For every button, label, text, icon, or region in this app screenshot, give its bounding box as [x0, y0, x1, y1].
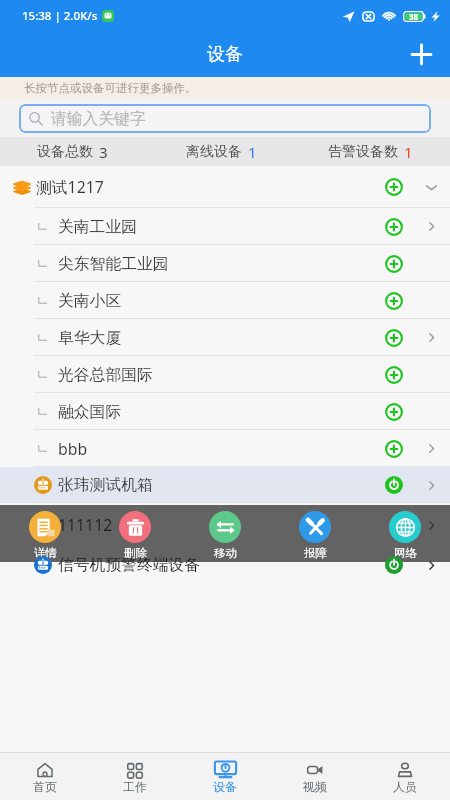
staticText: 关南小区 [58, 291, 122, 311]
staticText: 删除 [124, 546, 147, 560]
button[interactable]: 关南小区 [0, 282, 450, 319]
staticText: 3 [99, 142, 108, 162]
staticText: 报障 [304, 546, 327, 560]
staticText: 请输入关键字 [51, 109, 146, 129]
staticText: 信号机预警终端设备 [58, 555, 201, 575]
staticText: 111112 [58, 514, 113, 536]
button[interactable]: 人员 [360, 753, 450, 800]
button[interactable]: Add node [375, 166, 412, 208]
staticText: 1 [404, 142, 413, 162]
staticText: 1 [248, 142, 257, 162]
staticText: 38 [409, 11, 419, 22]
staticText: bbb [58, 438, 88, 460]
staticText: 尖东智能工业园 [58, 254, 169, 274]
staticText: 人员 [393, 779, 417, 794]
staticText: 15:38 | 2.0K/s [22, 8, 98, 24]
button[interactable]: 光谷总部国际 [0, 356, 450, 393]
button[interactable]: Add [375, 356, 412, 393]
staticText: 关南工业园 [58, 217, 137, 237]
button[interactable]: Power [375, 467, 412, 503]
button[interactable]: Add [375, 393, 412, 430]
staticText: 测试1217 [36, 176, 104, 198]
staticText: 阜华大厦 [58, 328, 122, 348]
button[interactable]: Add [375, 245, 412, 282]
button[interactable]: 删除 [90, 505, 180, 562]
button[interactable]: 阜华大厦 [0, 319, 450, 356]
button[interactable]: Add [375, 430, 412, 467]
button[interactable]: 首页 [0, 753, 90, 800]
staticText: 设备 [207, 43, 243, 66]
button[interactable]: bbb [0, 430, 450, 467]
staticText: 详情 [34, 546, 57, 560]
button[interactable]: 报障 [270, 505, 360, 562]
staticText: 张玮测试机箱 [58, 475, 153, 495]
button[interactable]: 设备 [180, 753, 270, 800]
button[interactable]: 工作 [90, 753, 180, 800]
staticText: 工作 [123, 779, 147, 794]
button[interactable]: 移动 [180, 505, 270, 562]
button[interactable]: 视频 [270, 753, 360, 800]
staticText: 融众国际 [58, 402, 122, 422]
staticText: 长按节点或设备可进行更多操作。 [24, 81, 197, 95]
button[interactable]: 张玮测试机箱 [0, 467, 450, 503]
button[interactable]: 尖东智能工业园 [0, 245, 450, 282]
button[interactable]: 请输入关键字 [19, 104, 431, 133]
button[interactable]: Add [375, 319, 412, 356]
button[interactable]: 详情 [0, 505, 90, 562]
button[interactable]: Add device [405, 32, 450, 77]
staticText: 告警设备数 [328, 143, 398, 161]
staticText: 网络 [394, 546, 417, 560]
staticText: 设备总数 [37, 143, 93, 161]
button[interactable]: 测试1217 [0, 166, 450, 208]
staticText: 视频 [303, 779, 327, 794]
button[interactable]: 融众国际 [0, 393, 450, 430]
staticText: 离线设备 [186, 143, 242, 161]
button[interactable]: Collapse [412, 166, 450, 208]
button[interactable]: Add [375, 208, 412, 245]
staticText: 设备 [213, 779, 237, 794]
button[interactable]: 关南工业园 [0, 208, 450, 245]
button[interactable]: Add [375, 282, 412, 319]
button[interactable]: 网络 [360, 505, 450, 562]
staticText: 移动 [214, 546, 237, 560]
staticText: 光谷总部国际 [58, 365, 153, 385]
staticText: 首页 [33, 779, 57, 794]
